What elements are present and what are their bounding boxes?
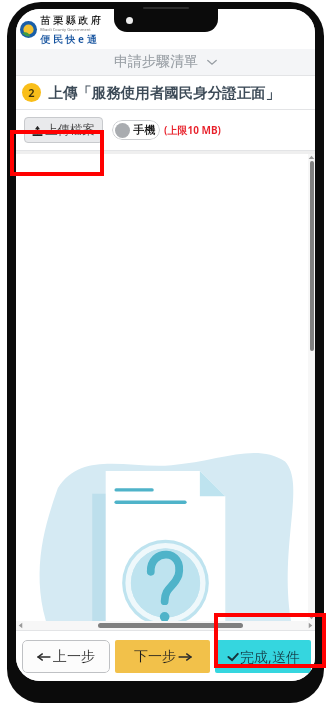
staticText: 上傳檔案 bbox=[45, 122, 95, 138]
staticText: 完成,送件 bbox=[240, 647, 300, 666]
button[interactable]: 完成,送件 bbox=[215, 640, 311, 673]
staticText: 苗 栗 縣 政 府 bbox=[40, 13, 101, 27]
button[interactable]: 申請步驟清單 bbox=[16, 49, 315, 75]
staticText: (上限10 MB) bbox=[164, 123, 221, 137]
staticText: 申請步驟清單 bbox=[114, 53, 198, 71]
button[interactable]: 下一步 bbox=[115, 640, 210, 673]
button[interactable]: 上一步 bbox=[22, 640, 110, 673]
staticText: 手機 bbox=[133, 123, 155, 137]
staticText: Miaoli County Government bbox=[40, 27, 91, 32]
button[interactable]: 上傳檔案 bbox=[24, 117, 103, 143]
staticText: 2 bbox=[28, 85, 35, 100]
staticText: 便 民 快 e 通 bbox=[40, 32, 97, 46]
staticText: 上傳「服務使用者國民身分證正面」 bbox=[48, 84, 280, 102]
staticText: 下一步 bbox=[134, 648, 176, 666]
button[interactable]: 手機 bbox=[112, 120, 160, 140]
staticText: 上一步 bbox=[53, 648, 95, 666]
button[interactable]: 苗栗縣政府 便民快e通 bbox=[20, 13, 101, 46]
